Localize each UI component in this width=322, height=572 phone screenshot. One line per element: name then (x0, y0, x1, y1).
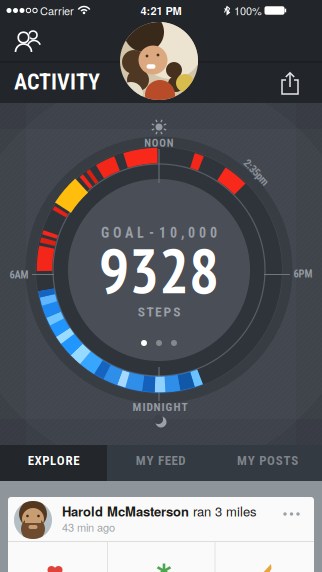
staticText: G O A L - 1 0 , 0 0 0 (101, 225, 217, 241)
button[interactable]: Share (275, 71, 305, 101)
staticText: NOON (144, 137, 174, 149)
staticText: 2:35pm (240, 166, 271, 179)
button[interactable]: MY POSTS (214, 445, 321, 481)
staticText: STEPS (138, 304, 180, 320)
staticText: 100% (234, 3, 262, 18)
button[interactable]: Award (213, 542, 314, 572)
staticText: Carrier (40, 3, 74, 18)
button[interactable]: More (282, 506, 302, 522)
staticText: 43 min ago (62, 519, 115, 535)
button[interactable]: Love (8, 542, 110, 572)
staticText: EXPLORE (28, 453, 79, 468)
staticText: 9328 (99, 229, 219, 311)
button[interactable]: MY FEED (107, 445, 214, 481)
staticText: MY FEED (136, 453, 185, 468)
staticText: Harold McMasterson ran 3 miles (62, 502, 257, 520)
button[interactable]: Harold McMasterson ran 3 miles (8, 497, 288, 541)
staticText: 6AM (9, 269, 28, 281)
button[interactable]: Friends (7, 25, 47, 61)
button[interactable]: Profile (120, 22, 198, 100)
button[interactable]: Cheer (110, 542, 213, 572)
staticText: MIDNIGHT (132, 400, 187, 414)
staticText: 6PM (293, 268, 312, 280)
staticText: MY POSTS (237, 453, 298, 468)
staticText: 4:21 PM (140, 3, 181, 18)
button[interactable]: EXPLORE (0, 445, 107, 481)
staticText: ACTIVITY (14, 69, 100, 95)
